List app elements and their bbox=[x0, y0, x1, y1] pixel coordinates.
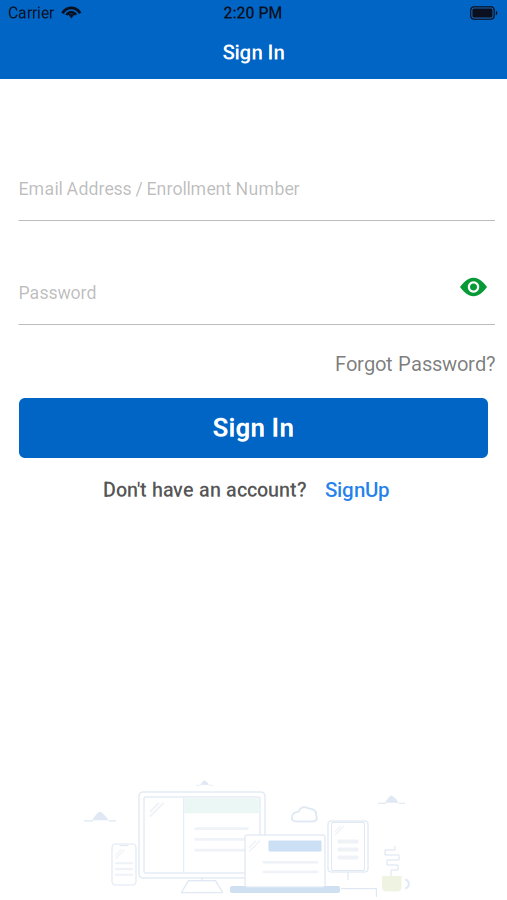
staticText: Password bbox=[18, 283, 96, 303]
button[interactable]: Show password bbox=[460, 282, 495, 304]
staticText: Don't have an account? bbox=[103, 478, 307, 501]
staticText: Sign In bbox=[222, 40, 284, 64]
button[interactable]: SignUp bbox=[325, 478, 390, 502]
staticText: Sign In bbox=[212, 413, 294, 443]
staticText: Carrier bbox=[8, 4, 54, 22]
staticText: Email Address / Enrollment Number bbox=[18, 179, 299, 199]
button[interactable]: Forgot Password? bbox=[335, 352, 496, 376]
staticText: SignUp bbox=[325, 478, 390, 502]
button[interactable]: Sign In bbox=[19, 398, 488, 458]
staticText: Forgot Password? bbox=[335, 352, 496, 376]
staticText: 2:20 PM bbox=[223, 4, 282, 22]
